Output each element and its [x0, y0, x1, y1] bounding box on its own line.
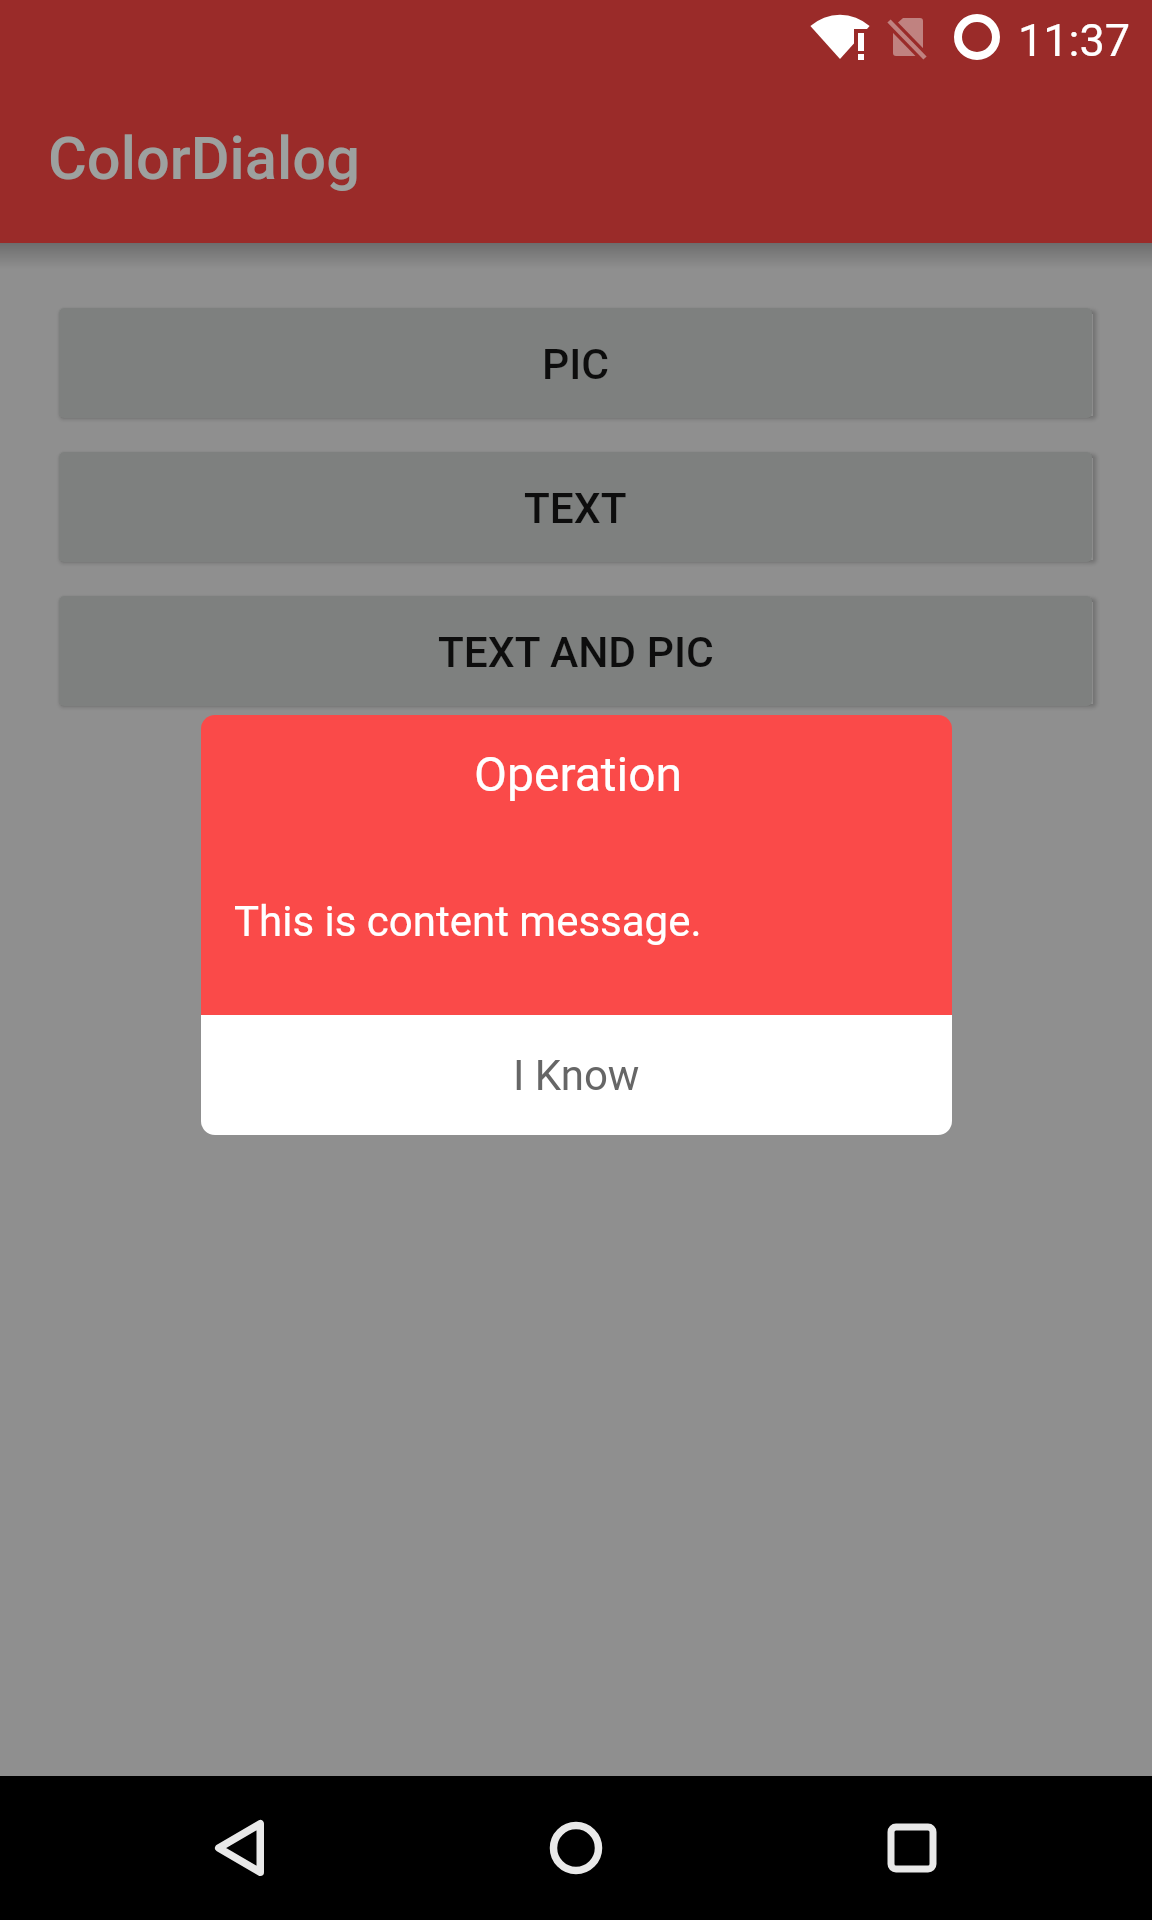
staticText: This is content message. [234, 897, 702, 946]
staticText: ColorDialog [48, 124, 360, 194]
staticText: 11:37 [1018, 14, 1131, 67]
button[interactable]: PIC [59, 308, 1092, 418]
button[interactable]: TEXT AND PIC [59, 596, 1092, 706]
button[interactable]: Back [170, 1788, 310, 1908]
staticText: TEXT [524, 484, 627, 534]
staticText: PIC [542, 340, 609, 390]
button[interactable]: Home [506, 1788, 646, 1908]
staticText: TEXT AND PIC [438, 628, 714, 678]
button[interactable]: I Know [201, 1015, 952, 1135]
button[interactable]: TEXT [59, 452, 1092, 562]
staticText: Operation [474, 746, 683, 802]
staticText: I Know [513, 1051, 640, 1100]
button[interactable]: Recent apps [842, 1788, 982, 1908]
